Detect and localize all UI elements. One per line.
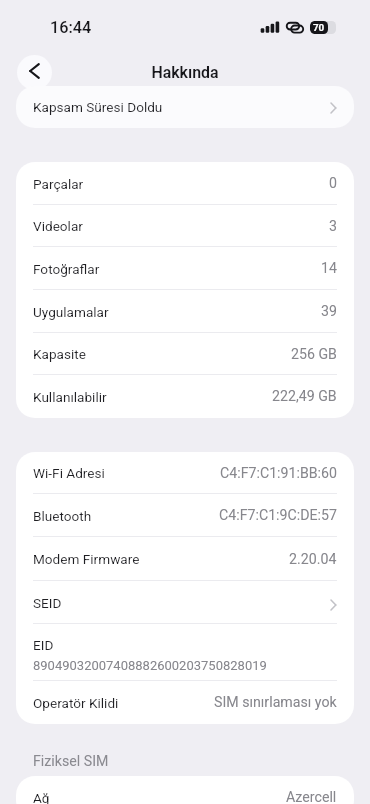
- staticText: Wi-Fi Adresi: [33, 465, 105, 481]
- button[interactable]: SEID: [16, 581, 354, 624]
- staticText: Bluetooth: [33, 508, 92, 524]
- staticText: 39: [321, 303, 337, 320]
- button[interactable]: Operatör Kilidi: [16, 681, 354, 724]
- staticText: Kapasite: [33, 346, 86, 362]
- staticText: 0: [329, 175, 337, 192]
- staticText: Modem Firmware: [33, 551, 140, 567]
- button[interactable]: Kapsam Süresi Doldu: [16, 86, 354, 128]
- staticText: SEID: [33, 595, 62, 611]
- staticText: 2.20.04: [289, 551, 337, 568]
- button[interactable]: Bluetooth: [16, 494, 354, 537]
- staticText: Ağ: [33, 790, 50, 804]
- other: VPN connected: [285, 21, 305, 35]
- staticText: Kapsam Süresi Doldu: [33, 99, 163, 115]
- staticText: SIM sınırlaması yok: [214, 694, 337, 711]
- staticText: 89049032007408882600203750828019: [33, 658, 267, 673]
- staticText: C4:F7:C1:91:BB:60: [220, 465, 337, 482]
- staticText: 16:44: [50, 18, 92, 37]
- button[interactable]: Back: [17, 55, 52, 90]
- staticText: C4:F7:C1:9C:DE:57: [219, 507, 337, 524]
- staticText: 14: [321, 260, 337, 277]
- button[interactable]: Ağ: [16, 776, 354, 804]
- other: Battery 70 percent: [310, 21, 336, 34]
- staticText: Kullanılabilir: [33, 389, 107, 405]
- button[interactable]: EID: [16, 624, 354, 681]
- staticText: 222,49 GB: [272, 388, 337, 405]
- staticText: EID: [33, 637, 54, 653]
- button[interactable]: Fotoğraflar: [16, 247, 354, 290]
- button[interactable]: Kullanılabilir: [16, 375, 354, 418]
- staticText: 256 GB: [291, 346, 337, 363]
- staticText: 70: [313, 22, 325, 33]
- staticText: Hakkında: [0, 63, 370, 82]
- button[interactable]: Videolar: [16, 205, 354, 247]
- staticText: Operatör Kilidi: [33, 695, 119, 711]
- staticText: Videolar: [33, 218, 83, 234]
- staticText: 3: [329, 218, 337, 235]
- button[interactable]: Uygulamalar: [16, 290, 354, 333]
- button[interactable]: Wi-Fi Adresi: [16, 452, 354, 494]
- staticText: Uygulamalar: [33, 304, 109, 320]
- staticText: Fotoğraflar: [33, 261, 100, 277]
- button[interactable]: Modem Firmware: [16, 537, 354, 581]
- other: Signal strength: [260, 21, 280, 34]
- button[interactable]: Kapasite: [16, 333, 354, 375]
- staticText: Fiziksel SIM: [33, 753, 109, 770]
- staticText: Parçalar: [33, 176, 84, 192]
- button[interactable]: Parçalar: [16, 162, 354, 205]
- staticText: Azercell: [286, 789, 337, 804]
